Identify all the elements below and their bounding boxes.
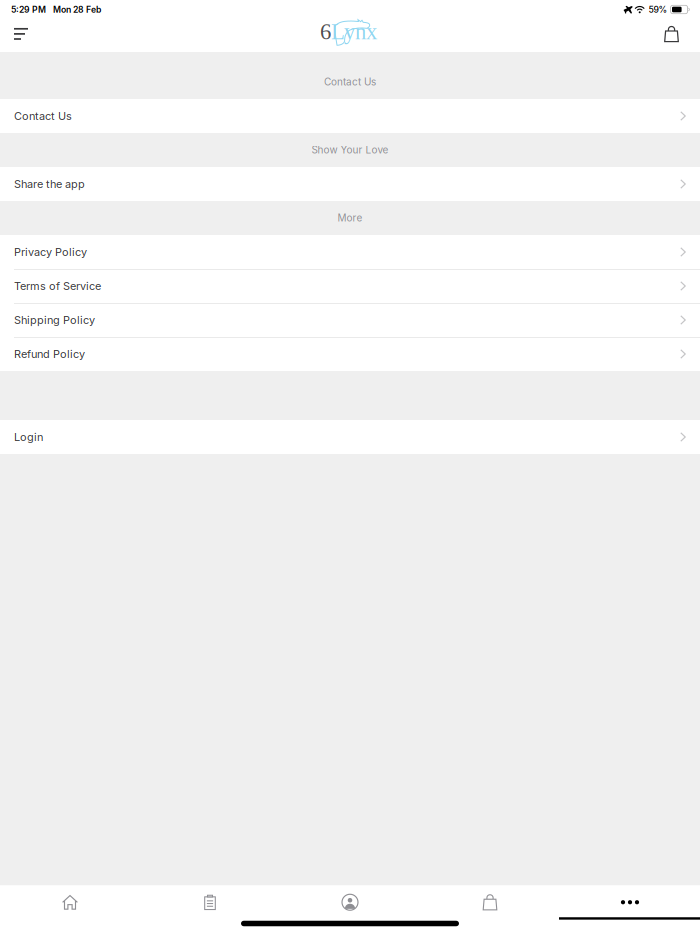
button[interactable]: Share the app <box>0 167 700 201</box>
button[interactable]: Menu <box>0 19 62 52</box>
button[interactable]: Privacy Policy <box>0 235 700 269</box>
staticText: Mon 28 Feb <box>53 4 101 15</box>
staticText: Contact Us <box>14 109 72 123</box>
button[interactable]: More <box>560 885 700 919</box>
button[interactable]: Login <box>0 420 700 454</box>
staticText: Privacy Policy <box>14 245 87 259</box>
staticText: Refund Policy <box>14 347 85 361</box>
button[interactable]: Refund Policy <box>0 337 700 371</box>
staticText: 5:29 PM <box>11 4 46 15</box>
staticText: Terms of Service <box>14 279 101 293</box>
button[interactable]: Home <box>0 885 140 919</box>
button[interactable]: Shipping Policy <box>0 303 700 337</box>
button[interactable]: Contact Us <box>0 99 700 133</box>
staticText: Login <box>14 430 43 444</box>
staticText: More <box>337 212 362 224</box>
staticText: Show Your Love <box>311 144 388 156</box>
button[interactable]: Account <box>280 885 420 919</box>
staticText: Contact Us <box>324 76 376 88</box>
staticText: Shipping Policy <box>14 313 95 327</box>
button[interactable]: Terms of Service <box>0 269 700 303</box>
staticText: Lynx <box>331 19 377 44</box>
button[interactable]: Shopping bag <box>638 19 700 52</box>
button[interactable]: Orders <box>140 885 280 919</box>
staticText: Share the app <box>14 177 85 191</box>
staticText: 59% <box>649 4 668 15</box>
staticText: 6 <box>320 19 331 44</box>
button[interactable]: Cart <box>420 885 560 919</box>
